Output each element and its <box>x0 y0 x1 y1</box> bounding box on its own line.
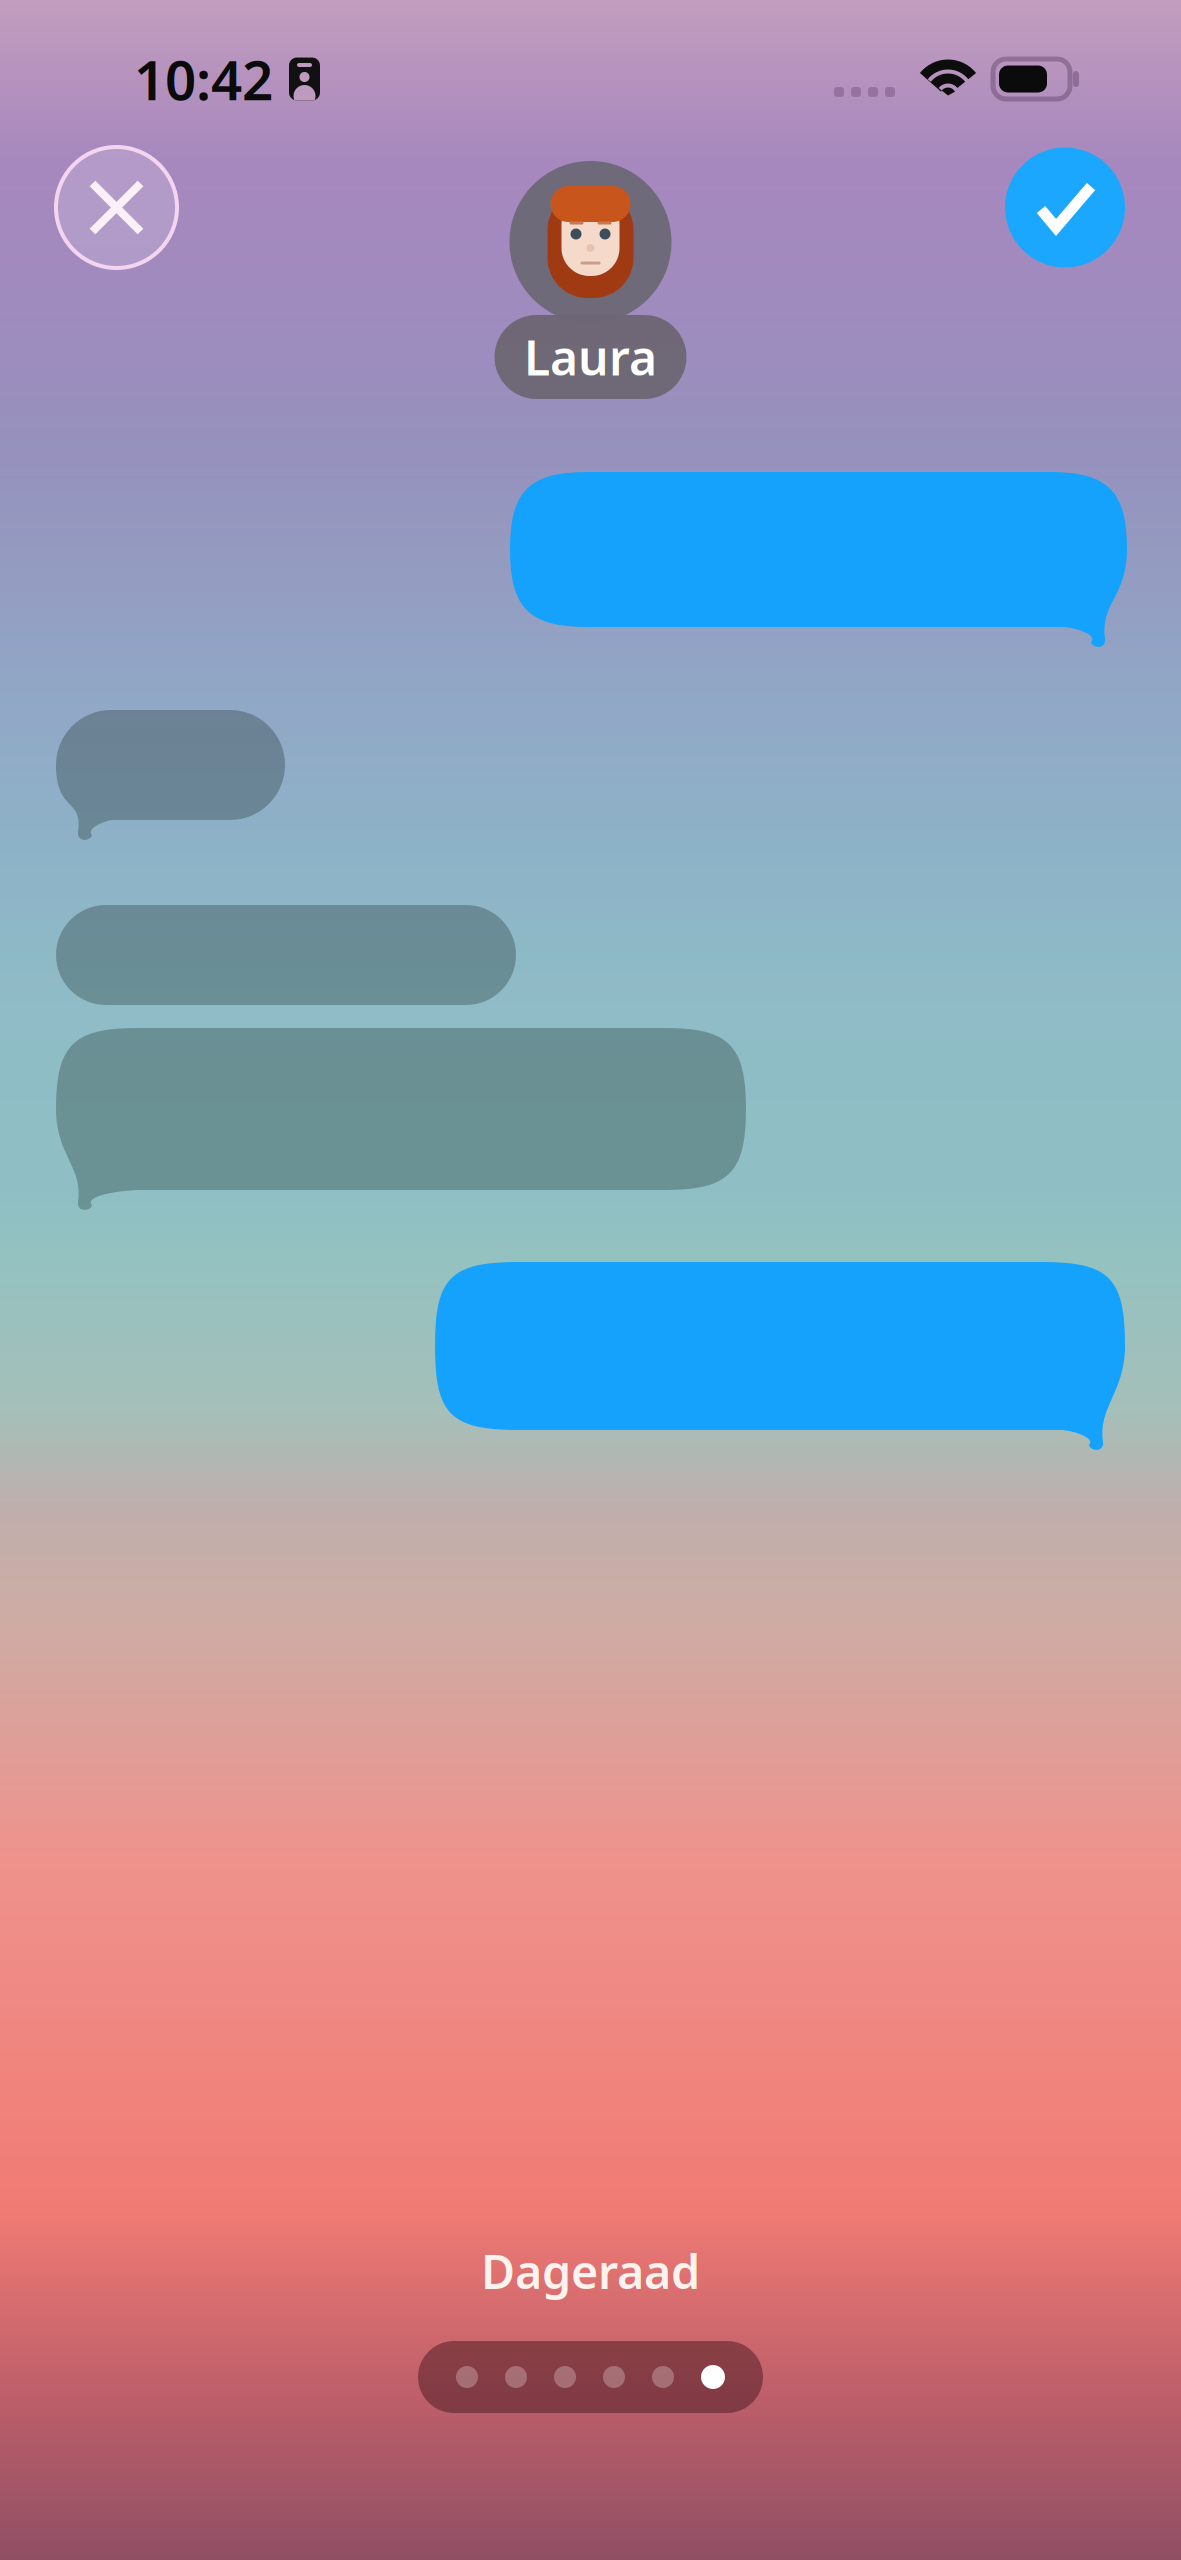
staticText: Dageraad <box>481 2240 700 2302</box>
staticText: 10:42 <box>134 43 273 115</box>
button[interactable]: Done <box>1005 147 1125 267</box>
button[interactable]: Cancel <box>56 147 177 268</box>
staticText: Laura <box>524 325 657 389</box>
